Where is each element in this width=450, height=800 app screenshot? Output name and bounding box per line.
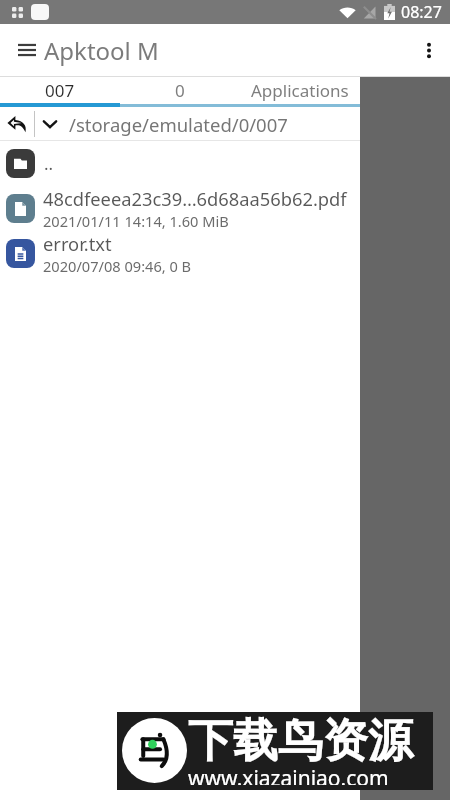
staticText: 2020/07/08 09:46, 0 B bbox=[43, 256, 192, 276]
staticText: error.txt bbox=[43, 231, 112, 256]
staticText: 08:27 bbox=[401, 1, 442, 23]
staticText: 48cdfeeea23c39…6d68aa56b62.pdf bbox=[43, 186, 347, 211]
staticText: Apktool M bbox=[44, 34, 159, 67]
button[interactable]: 007 bbox=[0, 77, 120, 107]
staticText: /storage/emulated/0/007 bbox=[69, 112, 288, 137]
button[interactable]: 48cdfeeea23c39…6d68aa56b62.pdf bbox=[0, 186, 360, 231]
button[interactable]: error.txt bbox=[0, 231, 360, 276]
button[interactable]: Go up bbox=[0, 107, 34, 141]
button[interactable]: Applications bbox=[240, 77, 360, 107]
staticText: www.xiazainiao.com bbox=[188, 764, 389, 785]
button[interactable]: Path dropdown bbox=[35, 107, 65, 141]
button[interactable]: More options bbox=[408, 24, 450, 76]
button[interactable]: .. bbox=[0, 141, 360, 186]
staticText: .. bbox=[44, 152, 54, 175]
button[interactable]: Open navigation menu bbox=[0, 24, 44, 76]
staticText: 007 bbox=[45, 79, 75, 102]
staticText: Applications bbox=[251, 79, 349, 102]
staticText: 2021/01/11 14:14, 1.60 MiB bbox=[43, 211, 229, 231]
staticText: 下载鸟资源 bbox=[188, 713, 413, 770]
button[interactable]: 0 bbox=[120, 77, 240, 107]
staticText: 0 bbox=[175, 79, 185, 102]
